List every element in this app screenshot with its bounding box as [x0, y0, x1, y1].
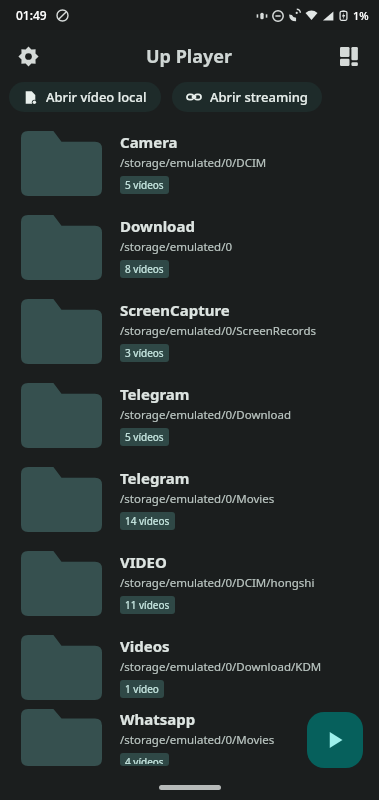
staticText: Camera	[120, 132, 178, 152]
button[interactable]: Whatsapp	[0, 709, 379, 766]
button[interactable]: Camera	[0, 121, 379, 205]
staticText: Videos	[120, 636, 170, 656]
button[interactable]: VIDEO	[0, 541, 379, 625]
staticText: /storage/emulated/0	[120, 239, 233, 255]
button[interactable]: Abrir streaming	[172, 82, 322, 112]
button[interactable]: Telegram	[0, 457, 379, 541]
staticText: /storage/emulated/0/Movies	[120, 491, 275, 507]
staticText: 01:49	[16, 7, 47, 23]
button[interactable]: Telegram	[0, 373, 379, 457]
staticText: /storage/emulated/0/DCIM	[120, 155, 267, 171]
staticText: Abrir vídeo local	[46, 88, 147, 106]
button[interactable]: Abrir vídeo local	[9, 82, 161, 112]
staticText: 5 vídeos	[125, 178, 164, 192]
staticText: /storage/emulated/0/Download	[120, 407, 292, 423]
staticText: Whatsapp	[120, 709, 196, 729]
button[interactable]: Play	[307, 712, 363, 768]
staticText: Telegram	[120, 384, 190, 404]
staticText: 14 vídeos	[125, 514, 170, 528]
staticText: /storage/emulated/0/DCIM/hongshi	[120, 575, 315, 591]
button[interactable]: Grid view	[329, 36, 369, 76]
staticText: /storage/emulated/0/Download/KDM	[120, 659, 322, 675]
staticText: 5 vídeos	[125, 430, 164, 444]
staticText: /storage/emulated/0/Movies	[120, 732, 275, 748]
button[interactable]: ScreenCapture	[0, 289, 379, 373]
staticText: Download	[120, 216, 195, 236]
staticText: VIDEO	[120, 552, 167, 572]
staticText: ScreenCapture	[120, 300, 230, 320]
staticText: 1%	[353, 8, 369, 23]
button[interactable]: Videos	[0, 625, 379, 709]
staticText: Up Player	[146, 44, 233, 69]
staticText: 3 vídeos	[125, 346, 164, 360]
staticText: Abrir streaming	[210, 88, 308, 106]
staticText: 8 vídeos	[125, 262, 164, 276]
button[interactable]: Download	[0, 205, 379, 289]
staticText: 4 vídeos	[125, 755, 164, 764]
staticText: Telegram	[120, 468, 190, 488]
staticText: 1 vídeo	[125, 682, 159, 696]
staticText: /storage/emulated/0/ScreenRecords	[120, 323, 316, 339]
button[interactable]: Settings	[8, 36, 48, 76]
staticText: 11 vídeos	[125, 598, 170, 612]
